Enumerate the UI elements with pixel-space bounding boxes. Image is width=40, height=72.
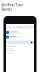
staticText: Search <box>17 26 23 28</box>
staticText: Quotes <box>1 8 11 11</box>
button[interactable] <box>6 35 34 39</box>
button[interactable] <box>6 30 34 35</box>
staticText: Get Real Time <box>1 3 23 7</box>
